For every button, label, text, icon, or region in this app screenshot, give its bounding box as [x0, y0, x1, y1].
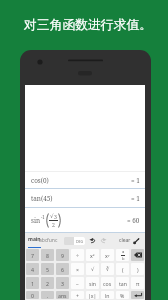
button[interactable]: Settings [133, 237, 140, 244]
button[interactable]: sin [86, 277, 99, 289]
staticText: π [136, 280, 140, 287]
staticText: func [47, 237, 58, 244]
button[interactable]: ln [101, 291, 114, 299]
staticText: clear [119, 237, 131, 244]
staticText: 1 [31, 280, 34, 287]
staticText: 9 [61, 252, 64, 259]
staticText: + [76, 292, 79, 299]
staticText: tan(45) [31, 194, 53, 203]
staticText: ÷ [76, 252, 79, 259]
button[interactable]: cos [101, 277, 114, 289]
staticText: √ [50, 213, 54, 220]
button[interactable]: tan [116, 277, 129, 289]
staticText: ( [122, 266, 124, 273]
staticText: 6 [61, 266, 64, 273]
button[interactable]: sin [25, 208, 145, 232]
staticText: xʸ [105, 252, 110, 259]
staticText: sin [89, 280, 97, 287]
staticText: 8 [46, 252, 49, 259]
button[interactable]: √ [86, 263, 99, 275]
button[interactable]: 8 [41, 249, 54, 261]
staticText: b [122, 256, 125, 261]
staticText: a [122, 249, 125, 255]
staticText: ) [137, 266, 139, 273]
staticText: . [47, 292, 49, 299]
staticText: 0 [31, 292, 34, 299]
button[interactable]: |x| [86, 291, 99, 299]
staticText: tan [119, 280, 127, 287]
button[interactable]: Enter [131, 291, 144, 299]
button[interactable]: ( [116, 263, 129, 275]
button[interactable]: abc [39, 233, 48, 248]
staticText: 2 [52, 221, 55, 228]
button[interactable]: tan(45) [25, 189, 145, 208]
button[interactable]: ) [131, 263, 144, 275]
staticText: = 60 [127, 216, 140, 225]
staticText: 4 [31, 266, 34, 273]
button[interactable]: π [131, 277, 144, 289]
button[interactable]: xʸ [101, 249, 114, 261]
staticText: 2 [46, 280, 49, 287]
button[interactable]: . [41, 291, 54, 299]
button[interactable]: ans [56, 291, 69, 299]
button[interactable]: ÷ [71, 249, 84, 261]
button[interactable]: 9 [56, 249, 69, 261]
button[interactable]: 0 [26, 291, 39, 299]
button[interactable]: % [116, 291, 129, 299]
staticText: x² [90, 252, 95, 259]
staticText: main [28, 236, 41, 243]
button[interactable]: func [47, 233, 58, 248]
staticText: 3 [54, 213, 57, 220]
button[interactable]: 1 [26, 277, 39, 289]
staticText: 3 [61, 280, 64, 287]
button[interactable]: Undo [89, 237, 96, 244]
button[interactable]: 4 [26, 263, 39, 275]
button[interactable]: 3 [56, 277, 69, 289]
staticText: √ [91, 266, 95, 272]
staticText: % [120, 292, 125, 299]
staticText: = 1 [131, 194, 140, 203]
staticText: cos [103, 280, 112, 287]
button[interactable]: 5 [41, 263, 54, 275]
button[interactable]: main [28, 233, 41, 248]
button[interactable]: Backspace [131, 249, 144, 261]
staticText: ans [58, 292, 67, 299]
staticText: -1 [41, 214, 45, 220]
staticText: 对三角函数进行求值。 [24, 17, 152, 33]
button[interactable]: Fraction [116, 249, 129, 261]
button[interactable]: ∛ [101, 263, 114, 275]
button[interactable]: × [71, 263, 84, 275]
button[interactable]: 6 [56, 263, 69, 275]
button[interactable]: x² [86, 249, 99, 261]
staticText: × [76, 266, 79, 273]
staticText: ∛ [106, 266, 110, 272]
button[interactable]: − [71, 277, 84, 289]
button[interactable]: Redo [100, 237, 107, 244]
staticText: = 1 [131, 176, 140, 185]
button[interactable]: 2 [41, 277, 54, 289]
staticText: − [76, 280, 79, 287]
staticText: cos(0) [31, 176, 49, 185]
button[interactable]: DEG [64, 237, 85, 245]
button[interactable]: clear [119, 233, 131, 248]
staticText: ln [105, 292, 110, 299]
button[interactable]: cos(0) [25, 172, 145, 189]
staticText: 5 [46, 266, 49, 273]
button[interactable]: 7 [26, 249, 39, 261]
staticText: abc [39, 237, 48, 244]
staticText: DEG [76, 239, 84, 244]
staticText: |x| [88, 292, 97, 299]
button[interactable]: + [71, 291, 84, 299]
staticText: 7 [31, 252, 34, 259]
staticText: sin [31, 216, 41, 225]
